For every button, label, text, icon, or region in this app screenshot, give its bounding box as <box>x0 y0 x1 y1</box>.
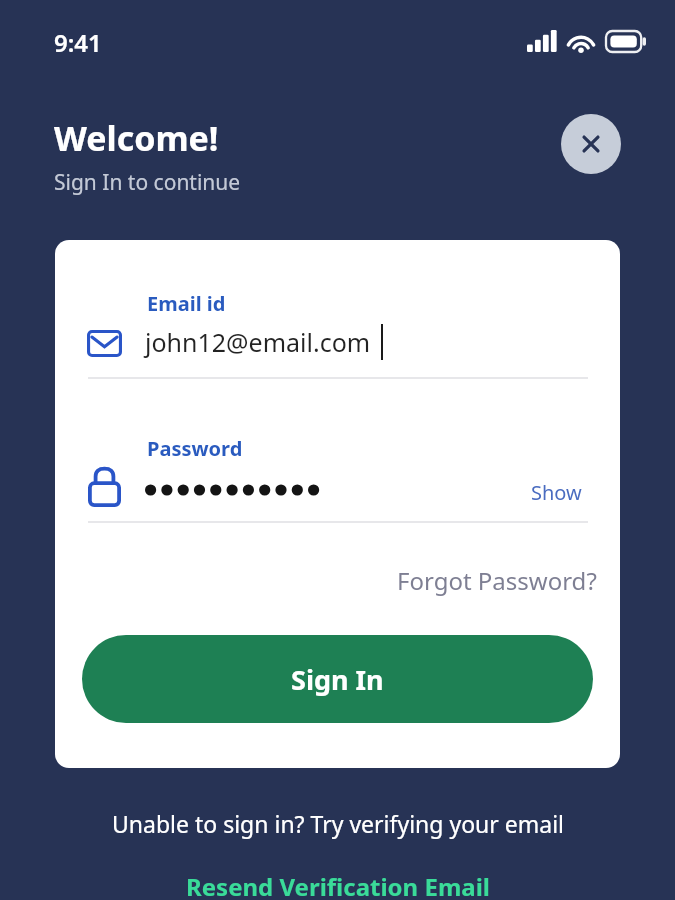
other: Email <box>87 330 122 357</box>
staticText: Unable to sign in? Try verifying your em… <box>112 808 564 839</box>
button[interactable]: Show <box>525 475 588 510</box>
staticText: Email id <box>147 290 226 317</box>
staticText: Resend Verification Email <box>186 870 490 900</box>
staticText: Sign In to continue <box>54 168 241 197</box>
staticText: Welcome! <box>54 115 219 161</box>
staticText: Sign In <box>291 661 384 698</box>
staticText: Password <box>147 435 243 462</box>
staticText: Show <box>531 479 582 506</box>
button[interactable]: Close <box>561 114 621 174</box>
button[interactable]: Forgot Password? <box>391 560 603 601</box>
staticText: Forgot Password? <box>397 564 597 597</box>
staticText: john12@email.com <box>145 325 371 359</box>
button[interactable]: Resend Verification Email <box>178 868 498 900</box>
button[interactable]: Sign In <box>82 635 593 723</box>
staticText: 9:41 <box>54 26 102 59</box>
other: Password <box>88 466 121 507</box>
